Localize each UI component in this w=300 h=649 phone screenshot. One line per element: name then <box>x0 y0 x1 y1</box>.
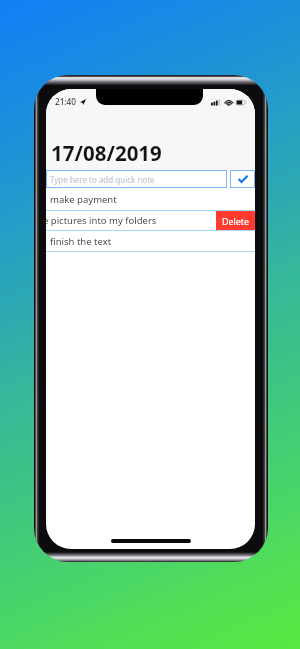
staticText: 17/08/2019 <box>51 139 162 167</box>
button[interactable]: Delete <box>216 211 255 230</box>
button[interactable]: make payment <box>46 188 255 210</box>
button[interactable]: finish the text <box>46 231 255 251</box>
staticText: Delete <box>222 215 250 227</box>
button[interactable]: Type here to add quick note <box>46 170 227 188</box>
staticText: finish the text <box>50 235 112 248</box>
staticText: 21:40 <box>55 96 76 107</box>
button[interactable]: Add note <box>230 170 255 188</box>
staticText: e pictures into my folders <box>46 214 157 227</box>
button[interactable]: e pictures into my folders <box>46 211 255 230</box>
staticText: Type here to add quick note <box>50 174 155 185</box>
staticText: make payment <box>50 193 117 206</box>
